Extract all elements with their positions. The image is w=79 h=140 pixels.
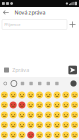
staticText: Příjemce [4, 22, 20, 27]
staticText: Nová zpráva [14, 9, 45, 16]
button[interactable]: Category [35, 77, 44, 89]
button[interactable]: Category [44, 77, 53, 89]
staticText: Zpráva [12, 66, 29, 74]
button[interactable]: Category [53, 77, 61, 89]
button[interactable]: Recent [1, 77, 10, 89]
button[interactable]: Smileys [10, 77, 18, 89]
button[interactable]: Category [18, 77, 27, 89]
button[interactable]: Add recipient [67, 19, 78, 30]
button[interactable]: Emoji keyboard [2, 65, 11, 74]
button[interactable]: Back [0, 7, 11, 18]
button[interactable]: Backspace [69, 77, 78, 89]
button[interactable]: Category [27, 77, 35, 89]
button[interactable]: Send [68, 66, 77, 74]
